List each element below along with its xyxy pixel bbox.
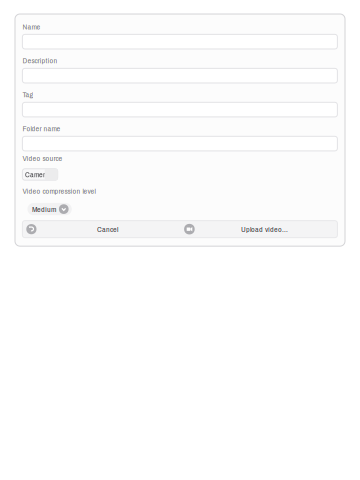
staticText: Camer [25,169,45,180]
staticText: Folder name [22,123,60,134]
staticText: Video source [22,153,62,164]
staticText: Medium [32,204,56,214]
button[interactable]: Cancel [40,221,174,238]
button[interactable]: Camer [22,169,58,180]
staticText: Tag [22,89,33,100]
button[interactable]: Record video [174,221,204,238]
staticText: Name [22,21,40,32]
staticText: Upload video... [241,224,288,235]
staticText: Video compression level [22,186,95,196]
staticText: Description [22,55,57,66]
button[interactable]: Back [22,221,40,238]
staticText: Cancel [97,224,118,235]
button[interactable]: Medium [27,203,72,215]
button[interactable]: Upload video... [204,221,324,238]
